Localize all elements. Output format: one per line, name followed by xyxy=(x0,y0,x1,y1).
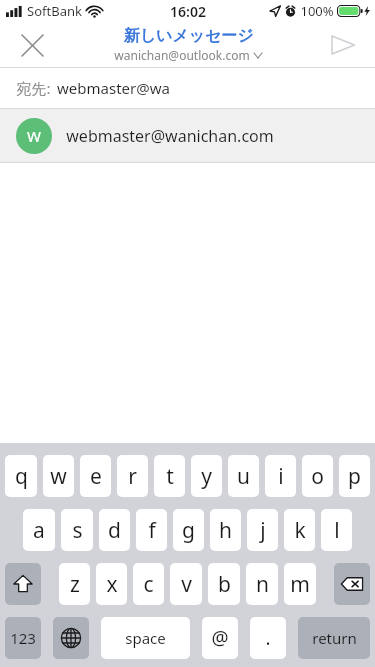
button[interactable]: 123 xyxy=(5,617,41,659)
button[interactable]: return xyxy=(298,617,370,659)
staticText: a xyxy=(33,516,45,545)
button[interactable]: u xyxy=(228,455,259,497)
button[interactable]: z xyxy=(59,563,90,605)
staticText: webmaster@wa xyxy=(57,78,170,98)
staticText: n xyxy=(256,570,269,599)
staticText: w xyxy=(50,462,67,491)
staticText: h xyxy=(219,516,232,545)
staticText: space xyxy=(125,628,166,648)
staticText: l xyxy=(334,516,340,545)
button[interactable]: i xyxy=(265,455,296,497)
staticText: v xyxy=(181,570,192,599)
button[interactable]: j xyxy=(247,509,278,551)
staticText: u xyxy=(237,462,250,491)
staticText: W xyxy=(27,126,41,146)
button[interactable]: Change keyboard xyxy=(53,617,89,659)
staticText: z xyxy=(70,570,80,599)
button[interactable]: W xyxy=(0,109,375,162)
button[interactable]: k xyxy=(284,509,315,551)
staticText: . xyxy=(265,625,271,651)
button[interactable]: d xyxy=(99,509,130,551)
button[interactable]: Close xyxy=(10,23,54,67)
staticText: q xyxy=(15,462,28,491)
button[interactable]: w xyxy=(43,455,74,497)
button[interactable]: Backspace xyxy=(334,563,370,605)
staticText: wanichan@outlook.com xyxy=(114,47,250,63)
staticText: @ xyxy=(211,625,229,651)
button[interactable]: y xyxy=(191,455,222,497)
button[interactable]: h xyxy=(210,509,241,551)
button[interactable]: p xyxy=(339,455,370,497)
staticText: b xyxy=(218,570,231,599)
button[interactable]: t xyxy=(154,455,185,497)
staticText: t xyxy=(166,462,174,491)
staticText: d xyxy=(108,516,121,545)
button[interactable]: f xyxy=(136,509,167,551)
button[interactable]: l xyxy=(321,509,352,551)
staticText: s xyxy=(72,516,83,545)
staticText: 16:02 xyxy=(170,2,206,21)
staticText: 新しいメッセージ xyxy=(123,26,254,46)
staticText: j xyxy=(260,516,266,545)
button[interactable]: Shift xyxy=(5,563,41,605)
button[interactable]: m xyxy=(284,563,316,605)
staticText: y xyxy=(201,462,212,491)
button[interactable]: s xyxy=(61,509,93,551)
button[interactable]: r xyxy=(117,455,148,497)
button[interactable]: a xyxy=(23,509,55,551)
staticText: 123 xyxy=(10,628,36,648)
button[interactable]: x xyxy=(96,563,127,605)
staticText: x xyxy=(106,570,118,599)
staticText: return xyxy=(312,628,357,648)
staticText: g xyxy=(182,516,195,545)
staticText: p xyxy=(348,462,361,491)
staticText: e xyxy=(90,462,102,491)
button[interactable]: Send xyxy=(321,23,365,67)
button[interactable]: o xyxy=(302,455,333,497)
button[interactable]: g xyxy=(173,509,204,551)
staticText: r xyxy=(128,462,137,491)
button[interactable]: @ xyxy=(202,617,238,659)
button[interactable]: q xyxy=(5,455,37,497)
staticText: 宛先: xyxy=(16,78,51,98)
button[interactable]: b xyxy=(208,563,240,605)
staticText: o xyxy=(311,462,324,491)
button[interactable]: . xyxy=(250,617,286,659)
button[interactable]: 宛先: xyxy=(0,68,375,108)
button[interactable]: c xyxy=(133,563,164,605)
staticText: k xyxy=(294,516,306,545)
staticText: 100% xyxy=(300,2,334,20)
staticText: c xyxy=(143,570,154,599)
button[interactable]: e xyxy=(80,455,111,497)
staticText: webmaster@wanichan.com xyxy=(66,125,274,147)
staticText: m xyxy=(290,570,310,599)
staticText: i xyxy=(278,462,284,491)
staticText: f xyxy=(148,516,156,545)
button[interactable]: space xyxy=(101,617,190,659)
button[interactable]: n xyxy=(246,563,278,605)
staticText: SoftBank xyxy=(27,2,82,20)
button[interactable]: v xyxy=(170,563,202,605)
